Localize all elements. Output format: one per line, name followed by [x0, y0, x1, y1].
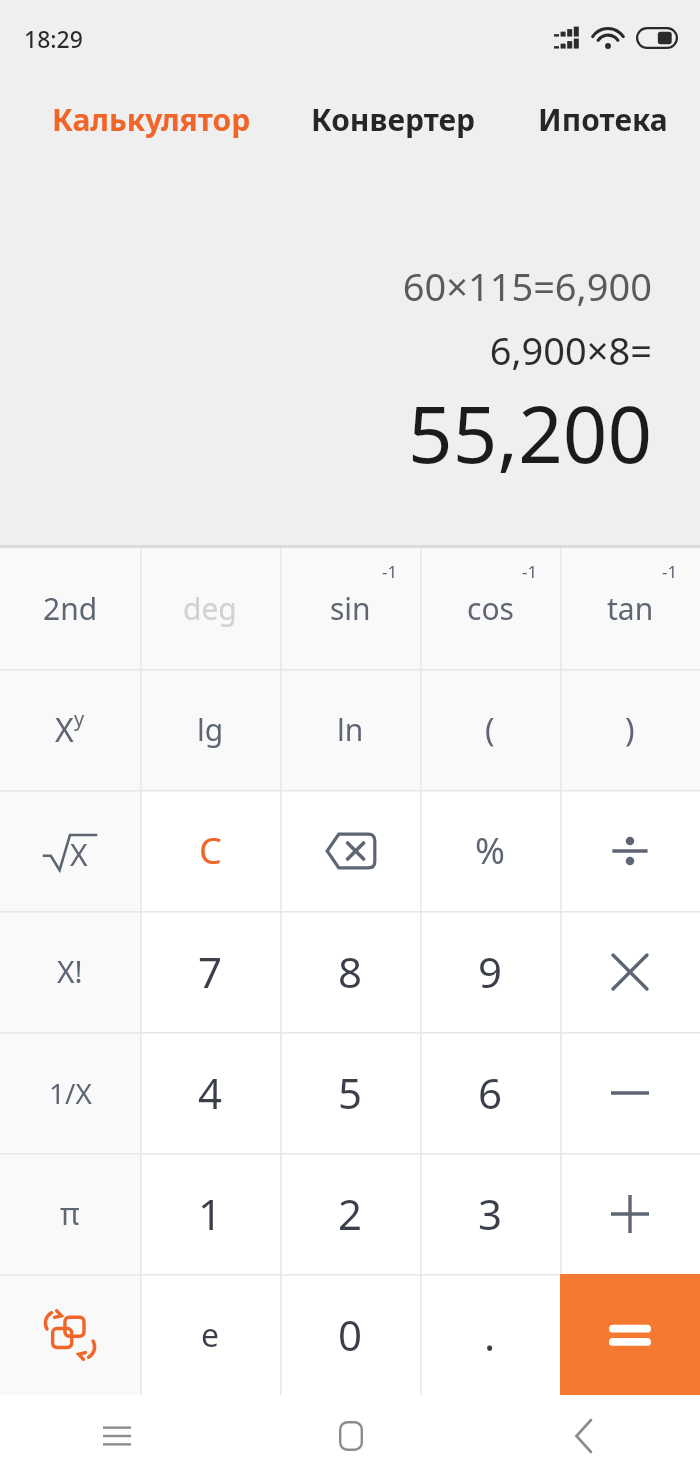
staticText: 0: [338, 1306, 363, 1363]
staticText: 5: [338, 1064, 363, 1121]
staticText: 6,900×8=: [489, 324, 652, 376]
button[interactable]: 1: [140, 1153, 280, 1274]
button[interactable]: (: [420, 669, 560, 790]
button[interactable]: 2nd: [0, 548, 140, 669]
button[interactable]: cos: [420, 548, 560, 669]
button[interactable]: Recent apps: [0, 1395, 234, 1477]
staticText: sin: [330, 588, 371, 629]
staticText: cos: [467, 588, 514, 629]
other: Multiply: [560, 911, 700, 1032]
button[interactable]: Square root: [0, 790, 140, 911]
button[interactable]: Equals: [560, 1274, 700, 1395]
button[interactable]: X: [0, 669, 140, 790]
button[interactable]: 5: [280, 1032, 420, 1153]
other: Divide: [560, 790, 700, 911]
button[interactable]: lg: [140, 669, 280, 790]
button[interactable]: Backspace: [280, 790, 420, 911]
button[interactable]: C: [140, 790, 280, 911]
button[interactable]: 1/X: [0, 1032, 140, 1153]
staticText: 1/X: [49, 1074, 92, 1112]
button[interactable]: 7: [140, 911, 280, 1032]
button[interactable]: 6: [420, 1032, 560, 1153]
other: Subtract: [560, 1032, 700, 1153]
button[interactable]: sin: [280, 548, 420, 669]
staticText: ln: [337, 709, 364, 750]
staticText: tan: [607, 588, 654, 629]
staticText: 18:29: [24, 23, 83, 54]
button[interactable]: Subtract: [560, 1032, 700, 1153]
staticText: 1: [198, 1185, 223, 1242]
staticText: 55,200: [408, 380, 652, 486]
button[interactable]: %: [420, 790, 560, 911]
staticText: 3: [478, 1185, 503, 1242]
staticText: .: [484, 1306, 496, 1363]
staticText: y: [74, 705, 85, 732]
staticText: 8: [338, 943, 363, 1000]
staticText: π: [60, 1193, 80, 1234]
button[interactable]: 3: [420, 1153, 560, 1274]
button[interactable]: e: [140, 1274, 280, 1395]
staticText: 7: [198, 943, 223, 1000]
other: Equals: [560, 1274, 700, 1395]
staticText: Ипотека: [538, 99, 668, 140]
button[interactable]: X!: [0, 911, 140, 1032]
staticText: -1: [522, 560, 538, 583]
button[interactable]: Back: [467, 1395, 700, 1477]
other: Add: [560, 1153, 700, 1274]
staticText: 9: [478, 943, 503, 1000]
staticText: e: [201, 1313, 220, 1357]
button[interactable]: ln: [280, 669, 420, 790]
button[interactable]: Ипотека: [538, 93, 668, 146]
button[interactable]: ): [560, 669, 700, 790]
button[interactable]: Switch mode: [0, 1274, 140, 1395]
button[interactable]: 8: [280, 911, 420, 1032]
button[interactable]: Home: [234, 1395, 467, 1477]
other: Switch mode: [0, 1274, 140, 1395]
staticText: 2nd: [43, 588, 98, 629]
staticText: X: [55, 708, 74, 752]
staticText: -1: [662, 560, 678, 583]
button[interactable]: π: [0, 1153, 140, 1274]
staticText: %: [475, 826, 505, 875]
staticText: X: [70, 834, 88, 875]
other: Backspace: [280, 790, 420, 911]
button[interactable]: 4: [140, 1032, 280, 1153]
staticText: (: [485, 708, 495, 752]
staticText: 60×115=6,900: [402, 260, 652, 312]
staticText: 2: [338, 1185, 363, 1242]
button[interactable]: deg: [140, 548, 280, 669]
staticText: 4: [198, 1064, 223, 1121]
staticText: ): [625, 708, 635, 752]
button[interactable]: Add: [560, 1153, 700, 1274]
button[interactable]: 9: [420, 911, 560, 1032]
staticText: -1: [382, 560, 398, 583]
staticText: lg: [197, 709, 224, 750]
button[interactable]: tan: [560, 548, 700, 669]
staticText: Калькулятор: [52, 99, 251, 140]
button[interactable]: Калькулятор: [52, 93, 251, 146]
button[interactable]: Multiply: [560, 911, 700, 1032]
staticText: X!: [57, 951, 83, 992]
button[interactable]: Divide: [560, 790, 700, 911]
staticText: 6: [478, 1064, 503, 1121]
button[interactable]: .: [420, 1274, 560, 1395]
button[interactable]: Конвертер: [311, 93, 476, 146]
staticText: C: [199, 826, 222, 875]
staticText: deg: [183, 588, 237, 629]
other: Square root: [0, 790, 140, 911]
staticText: Конвертер: [311, 99, 476, 140]
button[interactable]: 2: [280, 1153, 420, 1274]
button[interactable]: 0: [280, 1274, 420, 1395]
